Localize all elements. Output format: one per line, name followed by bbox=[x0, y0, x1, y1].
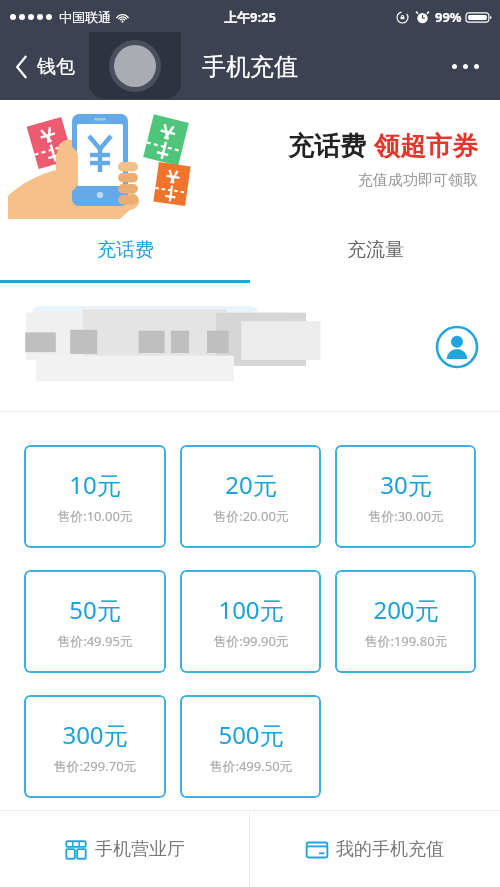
staticText: 充流量 bbox=[347, 238, 404, 262]
button[interactable]: 钱包 bbox=[0, 47, 87, 87]
staticText: 200元 bbox=[373, 593, 439, 626]
button[interactable]: 50元 bbox=[24, 570, 166, 673]
staticText: 售价:199.80元 bbox=[364, 632, 448, 650]
staticText: 手机营业厅 bbox=[95, 838, 185, 861]
button[interactable]: 30元 bbox=[335, 445, 476, 548]
button[interactable]: 300元 bbox=[24, 695, 166, 798]
staticText: 99% bbox=[435, 8, 462, 26]
staticText: 100元 bbox=[218, 593, 284, 626]
staticText: 售价:299.70元 bbox=[53, 757, 137, 775]
button[interactable]: 500元 bbox=[180, 695, 321, 798]
staticText: 300元 bbox=[62, 718, 128, 751]
button[interactable]: 我的手机充值 bbox=[250, 811, 500, 887]
button[interactable]: 手机营业厅 bbox=[0, 811, 249, 887]
staticText: 上午9:25 bbox=[224, 8, 276, 26]
staticText: 售价:49.95元 bbox=[57, 632, 133, 650]
staticText: 中国联通 bbox=[59, 9, 111, 25]
staticText: 20元 bbox=[225, 468, 277, 501]
button[interactable]: 200元 bbox=[335, 570, 476, 673]
button[interactable]: Choose contact bbox=[432, 322, 482, 372]
staticText: 我的手机充值 bbox=[336, 838, 444, 861]
staticText: 50元 bbox=[69, 593, 121, 626]
staticText: 充话费 bbox=[288, 130, 366, 163]
staticText: 售价:20.00元 bbox=[213, 507, 289, 525]
button[interactable]: 20元 bbox=[180, 445, 321, 548]
staticText: 售价:30.00元 bbox=[368, 507, 444, 525]
staticText: 500元 bbox=[218, 718, 284, 751]
staticText: 手机充值 bbox=[202, 52, 298, 82]
staticText: 30元 bbox=[380, 468, 432, 501]
staticText: 10元 bbox=[69, 468, 121, 501]
button[interactable]: 充流量 bbox=[250, 219, 500, 280]
button[interactable]: 充话费 bbox=[0, 219, 250, 280]
staticText: 售价:99.90元 bbox=[213, 632, 289, 650]
staticText: 领超市券 bbox=[374, 130, 478, 163]
staticText: 充话费 bbox=[97, 238, 154, 262]
staticText: 钱包 bbox=[37, 55, 75, 79]
staticText: 充值成功即可领取 bbox=[358, 171, 478, 190]
button[interactable]: More options bbox=[431, 46, 500, 87]
staticText: 售价:499.50元 bbox=[209, 757, 293, 775]
button[interactable]: 100元 bbox=[180, 570, 321, 673]
button[interactable]: 10元 bbox=[24, 445, 166, 548]
staticText: 售价:10.00元 bbox=[57, 507, 133, 525]
